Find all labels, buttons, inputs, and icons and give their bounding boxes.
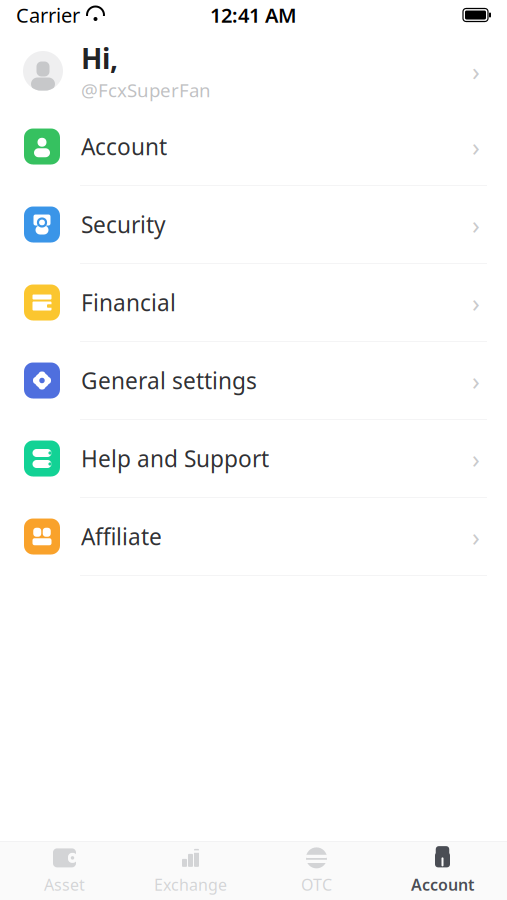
staticText: Hi, bbox=[81, 39, 118, 77]
button[interactable]: Exchange bbox=[127, 842, 253, 900]
staticText: 12:41 AM bbox=[210, 2, 297, 28]
staticText: Exchange bbox=[154, 874, 227, 895]
staticText: Affiliate bbox=[81, 521, 162, 551]
staticText: › bbox=[472, 130, 480, 163]
staticText: Financial bbox=[81, 287, 176, 317]
staticText: Help and Support bbox=[81, 443, 269, 473]
staticText: Security bbox=[81, 209, 166, 239]
staticText: › bbox=[472, 442, 480, 475]
staticText: › bbox=[472, 364, 480, 397]
button[interactable]: Affiliate bbox=[0, 498, 507, 576]
button[interactable]: Account bbox=[0, 108, 507, 186]
staticText: Carrier bbox=[16, 2, 80, 28]
staticText: › bbox=[472, 286, 480, 319]
staticText: @FcxSuperFan bbox=[81, 78, 211, 102]
staticText: › bbox=[472, 54, 480, 88]
button[interactable]: Financial bbox=[0, 264, 507, 342]
button[interactable]: General settings bbox=[0, 342, 507, 420]
button[interactable]: Security bbox=[0, 186, 507, 264]
button[interactable]: Help and Support bbox=[0, 420, 507, 498]
button[interactable]: Asset bbox=[1, 842, 127, 900]
button[interactable]: OTC bbox=[253, 842, 379, 900]
staticText: Account bbox=[411, 874, 474, 895]
staticText: OTC bbox=[301, 874, 332, 895]
button[interactable]: Hi, bbox=[0, 38, 507, 104]
button[interactable]: Account bbox=[379, 842, 505, 900]
staticText: General settings bbox=[81, 365, 257, 395]
staticText: › bbox=[472, 208, 480, 241]
staticText: › bbox=[472, 520, 480, 553]
staticText: Asset bbox=[44, 874, 85, 895]
staticText: Account bbox=[81, 131, 167, 161]
